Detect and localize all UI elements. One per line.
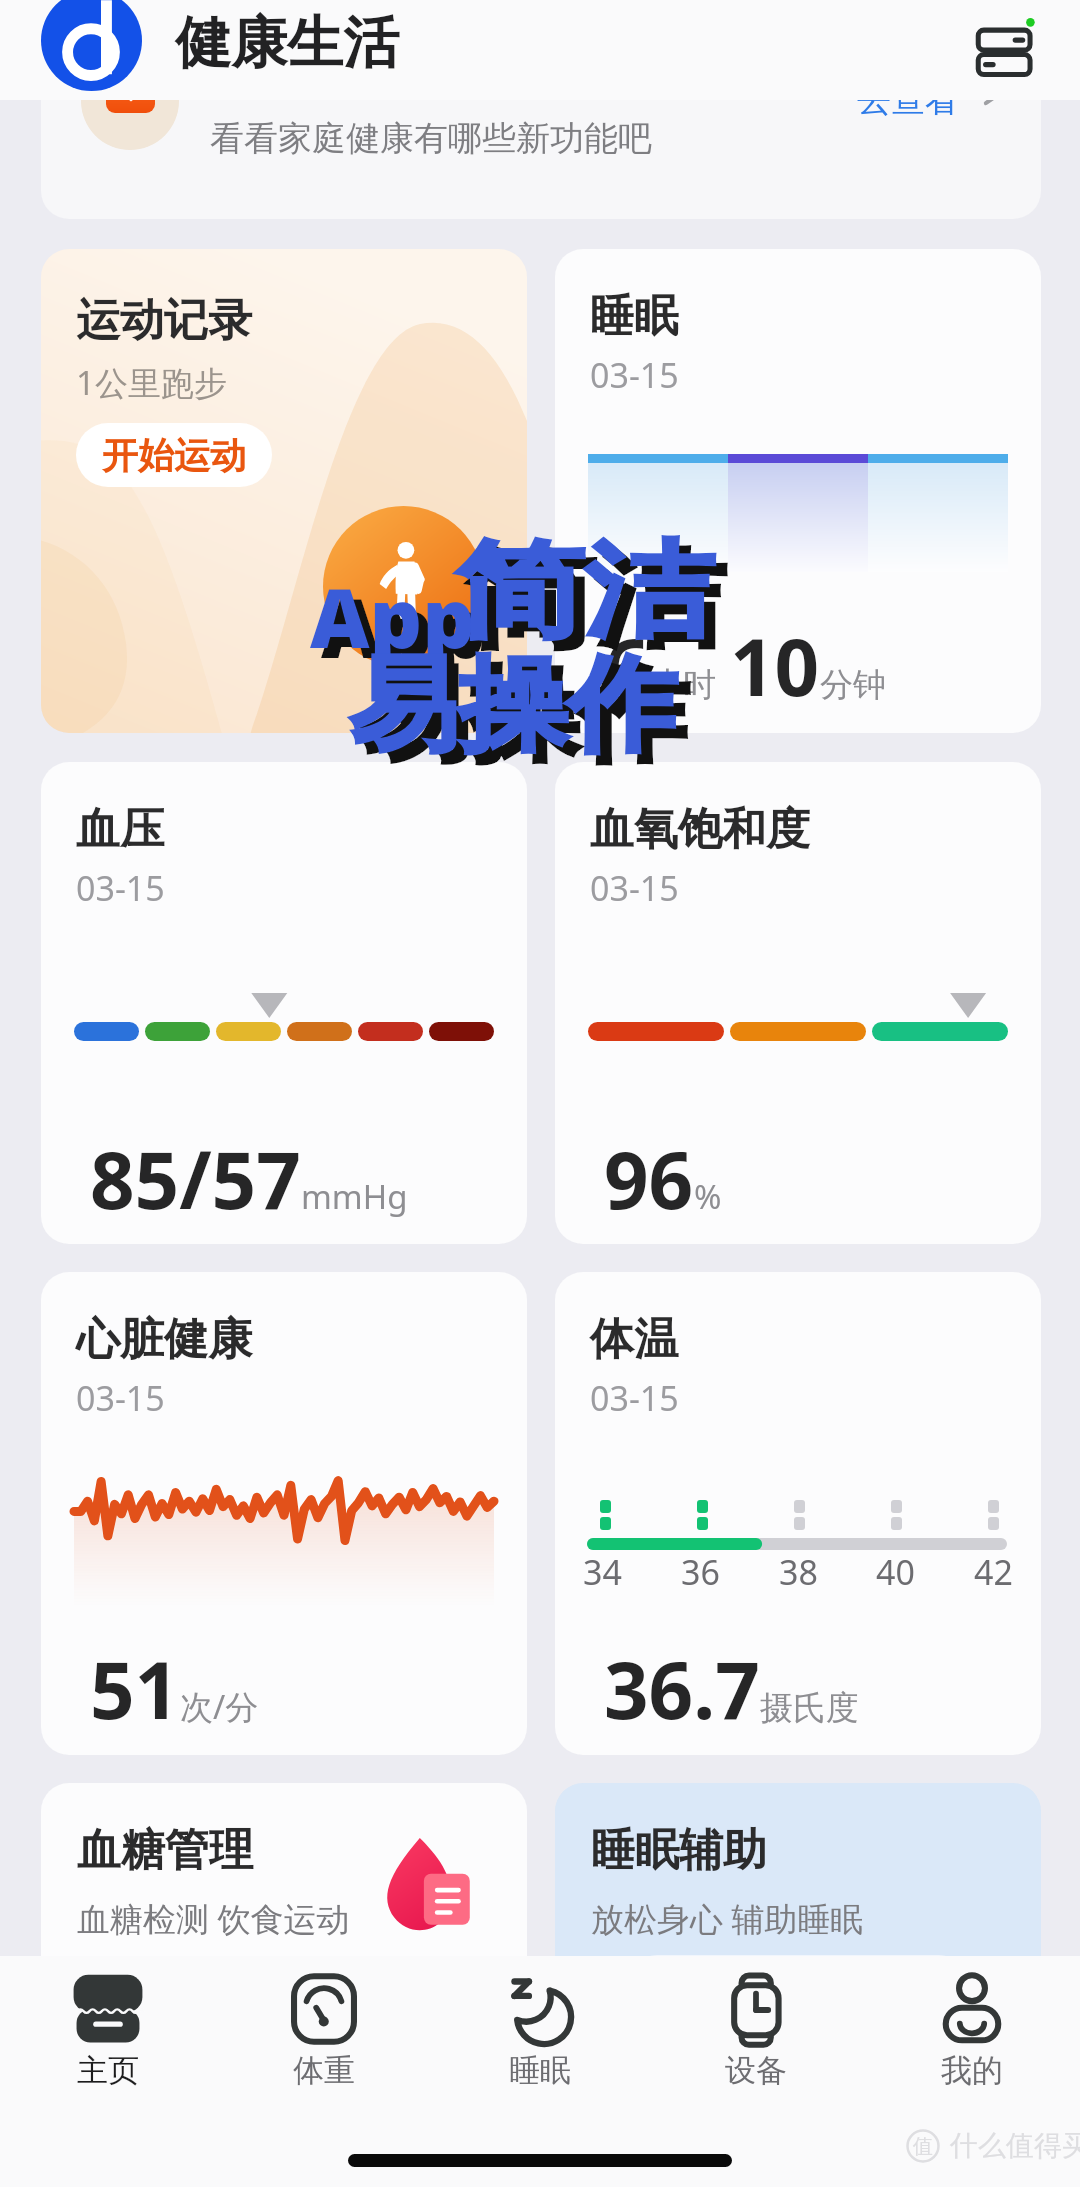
staticText: 睡眠辅助 — [591, 1823, 767, 1878]
button[interactable]: 血糖管理 — [41, 1783, 527, 2083]
staticText: App — [321, 570, 486, 682]
staticText: 血糖检测 饮食运动 — [77, 1896, 350, 1941]
button[interactable]: 睡眠 — [432, 1956, 648, 2106]
button[interactable]: 我的 — [864, 1956, 1080, 2106]
staticText: 运动记录 — [76, 293, 252, 348]
staticText: 36 — [681, 1549, 720, 1595]
staticText: 03-15 — [590, 865, 679, 911]
staticText: 血压 — [76, 802, 164, 857]
staticText: 开始运动 — [102, 433, 246, 478]
staticText: 摄氏度 — [760, 1687, 859, 1729]
button[interactable]: Devices — [969, 12, 1043, 86]
staticText: 心脏健康 — [76, 1312, 252, 1367]
button[interactable]: 体重 — [216, 1956, 432, 2106]
staticText: 什么值得买 — [950, 2128, 1080, 2163]
staticText: 40 — [876, 1549, 915, 1595]
staticText: 睡眠 — [509, 2051, 571, 2090]
button[interactable]: 血压 — [41, 762, 527, 1244]
staticText: 体温 — [590, 1312, 678, 1367]
staticText: 血氧饱和度 — [590, 802, 810, 857]
button[interactable]: 睡眠辅助 — [555, 1783, 1041, 2083]
button[interactable]: 主页 — [0, 1956, 216, 2106]
staticText: 51 — [90, 1636, 180, 1742]
staticText: 简洁 — [466, 537, 726, 667]
staticText: 36.7 — [604, 1636, 760, 1742]
staticText: 值 — [913, 2134, 933, 2159]
staticText: 放松身心 辅助睡眠 — [591, 1896, 864, 1941]
button[interactable]: 看看家庭健康有哪些新功能吧 — [41, 40, 1041, 219]
staticText: 03-15 — [590, 1375, 679, 1421]
button[interactable]: 运动记录 — [41, 249, 527, 733]
button[interactable]: 体温 — [555, 1272, 1041, 1755]
button[interactable]: 心脏健康 — [41, 1272, 527, 1755]
button[interactable]: 设备 — [648, 1956, 864, 2106]
staticText: App — [310, 560, 475, 672]
staticText: 6 — [605, 613, 650, 719]
staticText: 设备 — [725, 2051, 787, 2090]
staticText: 次/分 — [180, 1684, 259, 1729]
button[interactable]: 血氧饱和度 — [555, 762, 1041, 1244]
staticText: 主页 — [77, 2051, 139, 2090]
staticText: 10 — [730, 613, 820, 719]
staticText: 85/57 — [90, 1126, 301, 1232]
staticText: 42 — [974, 1549, 1013, 1595]
staticText: 38 — [779, 1549, 818, 1595]
staticText: 血糖管理 — [77, 1823, 253, 1878]
button[interactable]: 睡眠 — [555, 249, 1041, 733]
staticText: mmHg — [301, 1174, 408, 1219]
staticText: 简洁 — [455, 527, 715, 657]
staticText: 我的 — [941, 2051, 1003, 2090]
staticText: 03-15 — [76, 1375, 165, 1421]
staticText: 03-15 — [590, 352, 679, 398]
staticText: 小时 — [650, 664, 716, 706]
staticText: 03-15 — [76, 865, 165, 911]
staticText: 96 — [604, 1126, 694, 1232]
staticText: 34 — [583, 1549, 622, 1595]
staticText: 看看家庭健康有哪些新功能吧 — [210, 117, 652, 160]
staticText: 分钟 — [820, 664, 886, 706]
staticText: % — [694, 1174, 722, 1219]
staticText: 1公里跑步 — [76, 360, 227, 405]
button[interactable]: 开始运动 — [76, 423, 272, 487]
staticText: 睡眠 — [590, 289, 678, 344]
staticText: 易操作 — [349, 641, 676, 771]
staticText: 健康生活 — [175, 8, 399, 79]
staticText: 体重 — [293, 2051, 355, 2090]
staticText: 去查看 — [857, 78, 959, 121]
staticText: 易操作 — [361, 651, 688, 781]
